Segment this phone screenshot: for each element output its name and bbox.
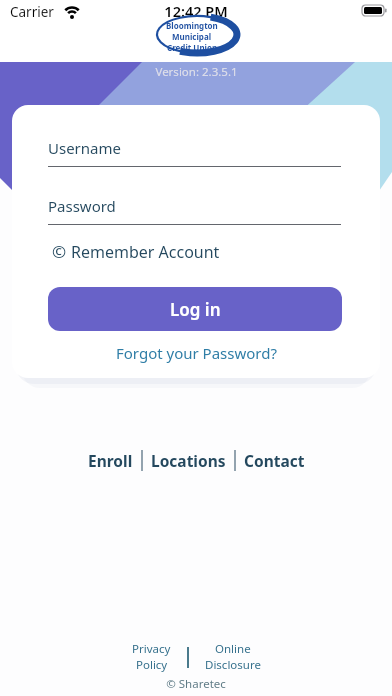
- staticText: Password: [48, 196, 116, 216]
- staticText: Bloomington: [166, 20, 218, 31]
- button[interactable]: Contact: [244, 450, 305, 471]
- staticText: 12:42 PM: [164, 1, 228, 21]
- button[interactable]: Enroll: [88, 450, 133, 471]
- button[interactable]: Log in: [48, 287, 342, 331]
- button[interactable]: Online: [205, 641, 261, 673]
- staticText: Disclosure: [205, 657, 261, 673]
- staticText: Log in: [170, 298, 221, 321]
- staticText: Municipal: [172, 31, 212, 42]
- staticText: Locations: [151, 450, 226, 471]
- staticText: Carrier: [10, 3, 54, 21]
- staticText: Privacy: [132, 641, 171, 657]
- staticText: Contact: [244, 450, 305, 471]
- staticText: Policy: [136, 657, 168, 673]
- staticText: Online: [215, 641, 251, 657]
- staticText: Remember Account: [71, 241, 220, 263]
- button[interactable]: Privacy: [132, 641, 171, 673]
- staticText: Forgot your Password?: [116, 343, 277, 363]
- staticText: Version: 2.3.5.1: [155, 64, 238, 80]
- button[interactable]: ©: [52, 240, 220, 263]
- staticText: Enroll: [88, 450, 133, 471]
- button[interactable]: Forgot your Password?: [116, 343, 277, 363]
- staticText: Username: [48, 138, 121, 158]
- staticText: ©: [52, 240, 67, 263]
- staticText: © Sharetec: [166, 676, 226, 692]
- button[interactable]: Locations: [151, 450, 226, 471]
- staticText: Credit Union: [167, 42, 218, 53]
